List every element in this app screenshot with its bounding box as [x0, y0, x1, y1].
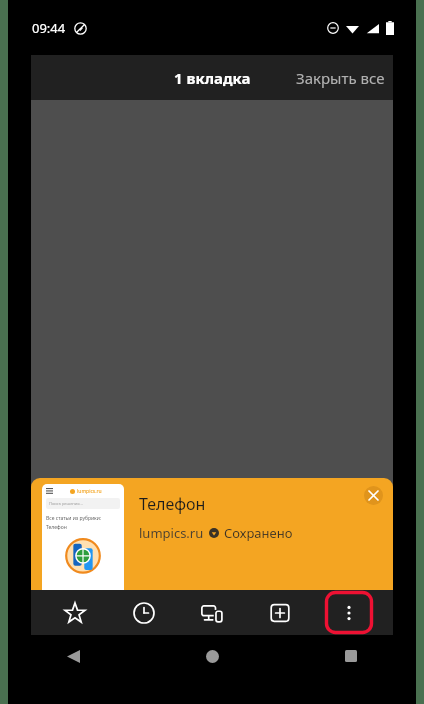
staticText: 09:44 [32, 19, 66, 37]
button[interactable]: Обзор [336, 641, 366, 671]
button[interactable]: Закрыть все [288, 62, 393, 94]
staticText: Закрыть все [296, 68, 385, 88]
staticText: Поиск решения... [49, 501, 83, 506]
button[interactable]: 1 вкладка [168, 64, 257, 92]
staticText: lumpics.ru [77, 488, 102, 495]
staticText: Все статьи из рубрики: [46, 515, 102, 522]
button[interactable]: Меню [325, 591, 373, 634]
button[interactable]: Закладки [51, 591, 99, 634]
staticText: Телефон [139, 493, 206, 515]
button[interactable]: lumpics.ru [31, 478, 393, 590]
button[interactable]: Назад [58, 641, 88, 671]
button[interactable]: Домой [197, 641, 227, 671]
button[interactable]: Новая вкладка [256, 591, 304, 634]
button[interactable]: История [120, 591, 168, 634]
button[interactable]: Закрыть вкладку [364, 486, 383, 505]
staticText: 1 вкладка [174, 68, 251, 88]
staticText: Сохранено [224, 524, 293, 542]
staticText: lumpics.ru [139, 524, 204, 542]
staticText: Телефон [46, 524, 67, 531]
button[interactable]: Устройства [188, 591, 236, 634]
